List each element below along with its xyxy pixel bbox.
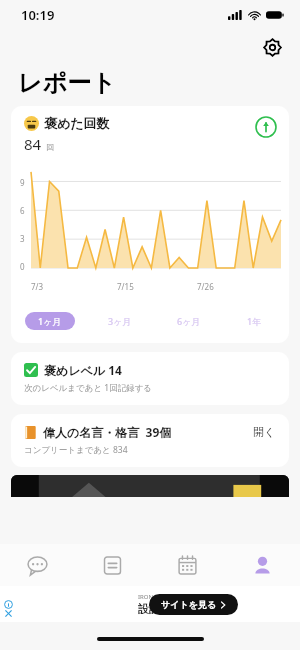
staticText: 3ヶ月 xyxy=(108,315,132,327)
staticText: 回 xyxy=(46,142,54,152)
button[interactable]: サイトを見る xyxy=(149,594,238,615)
staticText: 褒めた回数 xyxy=(44,115,110,131)
staticText: 7/26 xyxy=(197,281,214,292)
staticText: IRONCAD xyxy=(138,593,166,601)
staticText: 3 xyxy=(20,233,25,244)
button[interactable]: Profile xyxy=(225,544,300,586)
staticText: 褒めレベル 14 xyxy=(44,362,122,378)
button[interactable]: 3ヶ月 xyxy=(95,312,145,330)
button[interactable]: Calendar xyxy=(150,544,225,586)
staticText: 開く xyxy=(253,425,276,439)
staticText: 1ヶ月 xyxy=(38,315,62,327)
staticText: 設計技術を… xyxy=(138,601,203,616)
button[interactable]: 6ヶ月 xyxy=(164,312,214,330)
button[interactable]: Chat xyxy=(0,544,75,586)
staticText: 次のレベルまであと 1回記録する xyxy=(24,382,153,394)
button[interactable]: 1年 xyxy=(234,312,275,330)
staticText: レポート xyxy=(18,68,116,98)
staticText: 7/15 xyxy=(117,281,134,292)
staticText: サイトを見る xyxy=(161,599,217,610)
staticText: 10:19 xyxy=(21,6,55,24)
button[interactable]: Settings xyxy=(258,33,286,61)
staticText: 1年 xyxy=(247,315,262,327)
staticText: 0 xyxy=(20,261,25,272)
staticText: 6ヶ月 xyxy=(177,315,201,327)
staticText: 偉人の名言・格言 39個 xyxy=(43,424,172,440)
button[interactable]: 偉人の名言・格言 39個 xyxy=(11,414,289,467)
button[interactable]: Share report xyxy=(254,115,278,139)
button[interactable] xyxy=(11,475,289,497)
button[interactable]: Close ad xyxy=(0,586,300,622)
staticText: 7/3 xyxy=(31,281,44,292)
staticText: コンプリートまであと 834 xyxy=(24,444,128,456)
staticText: 9 xyxy=(20,177,25,188)
button[interactable]: Close ad xyxy=(3,608,14,619)
button[interactable]: 1ヶ月 xyxy=(25,312,75,330)
staticText: 84 xyxy=(24,134,42,154)
staticText: 6 xyxy=(20,205,25,216)
button[interactable]: 褒めレベル 14 xyxy=(11,352,289,405)
button[interactable]: List xyxy=(75,544,150,586)
